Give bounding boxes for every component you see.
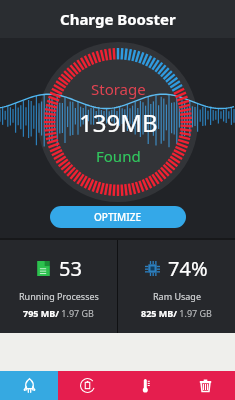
staticText: 825 MB/ 1.97 GB	[141, 307, 212, 319]
button[interactable]: OPTIMIZE	[50, 206, 186, 228]
staticText: 53	[59, 255, 82, 282]
button[interactable]: 74%	[118, 240, 235, 333]
staticText: Storage	[91, 79, 146, 99]
button[interactable]: Boost	[0, 371, 58, 400]
other: Boost	[22, 378, 37, 393]
staticText: Charge Booster	[60, 9, 176, 29]
staticText: 139MB	[79, 106, 158, 139]
button[interactable]: 53	[0, 240, 117, 333]
staticText: OPTIMIZE	[94, 210, 142, 224]
button[interactable]: Junk cleaner	[176, 371, 235, 400]
staticText: 795 MB/ 1.97 GB	[23, 307, 94, 319]
staticText: 74%	[168, 255, 208, 282]
staticText: Ram Usage	[153, 290, 201, 302]
button[interactable]: CPU cooler	[117, 371, 176, 400]
staticText: Found	[96, 146, 141, 166]
staticText: Running Processes	[19, 290, 99, 302]
button[interactable]: Battery saver	[58, 371, 117, 400]
